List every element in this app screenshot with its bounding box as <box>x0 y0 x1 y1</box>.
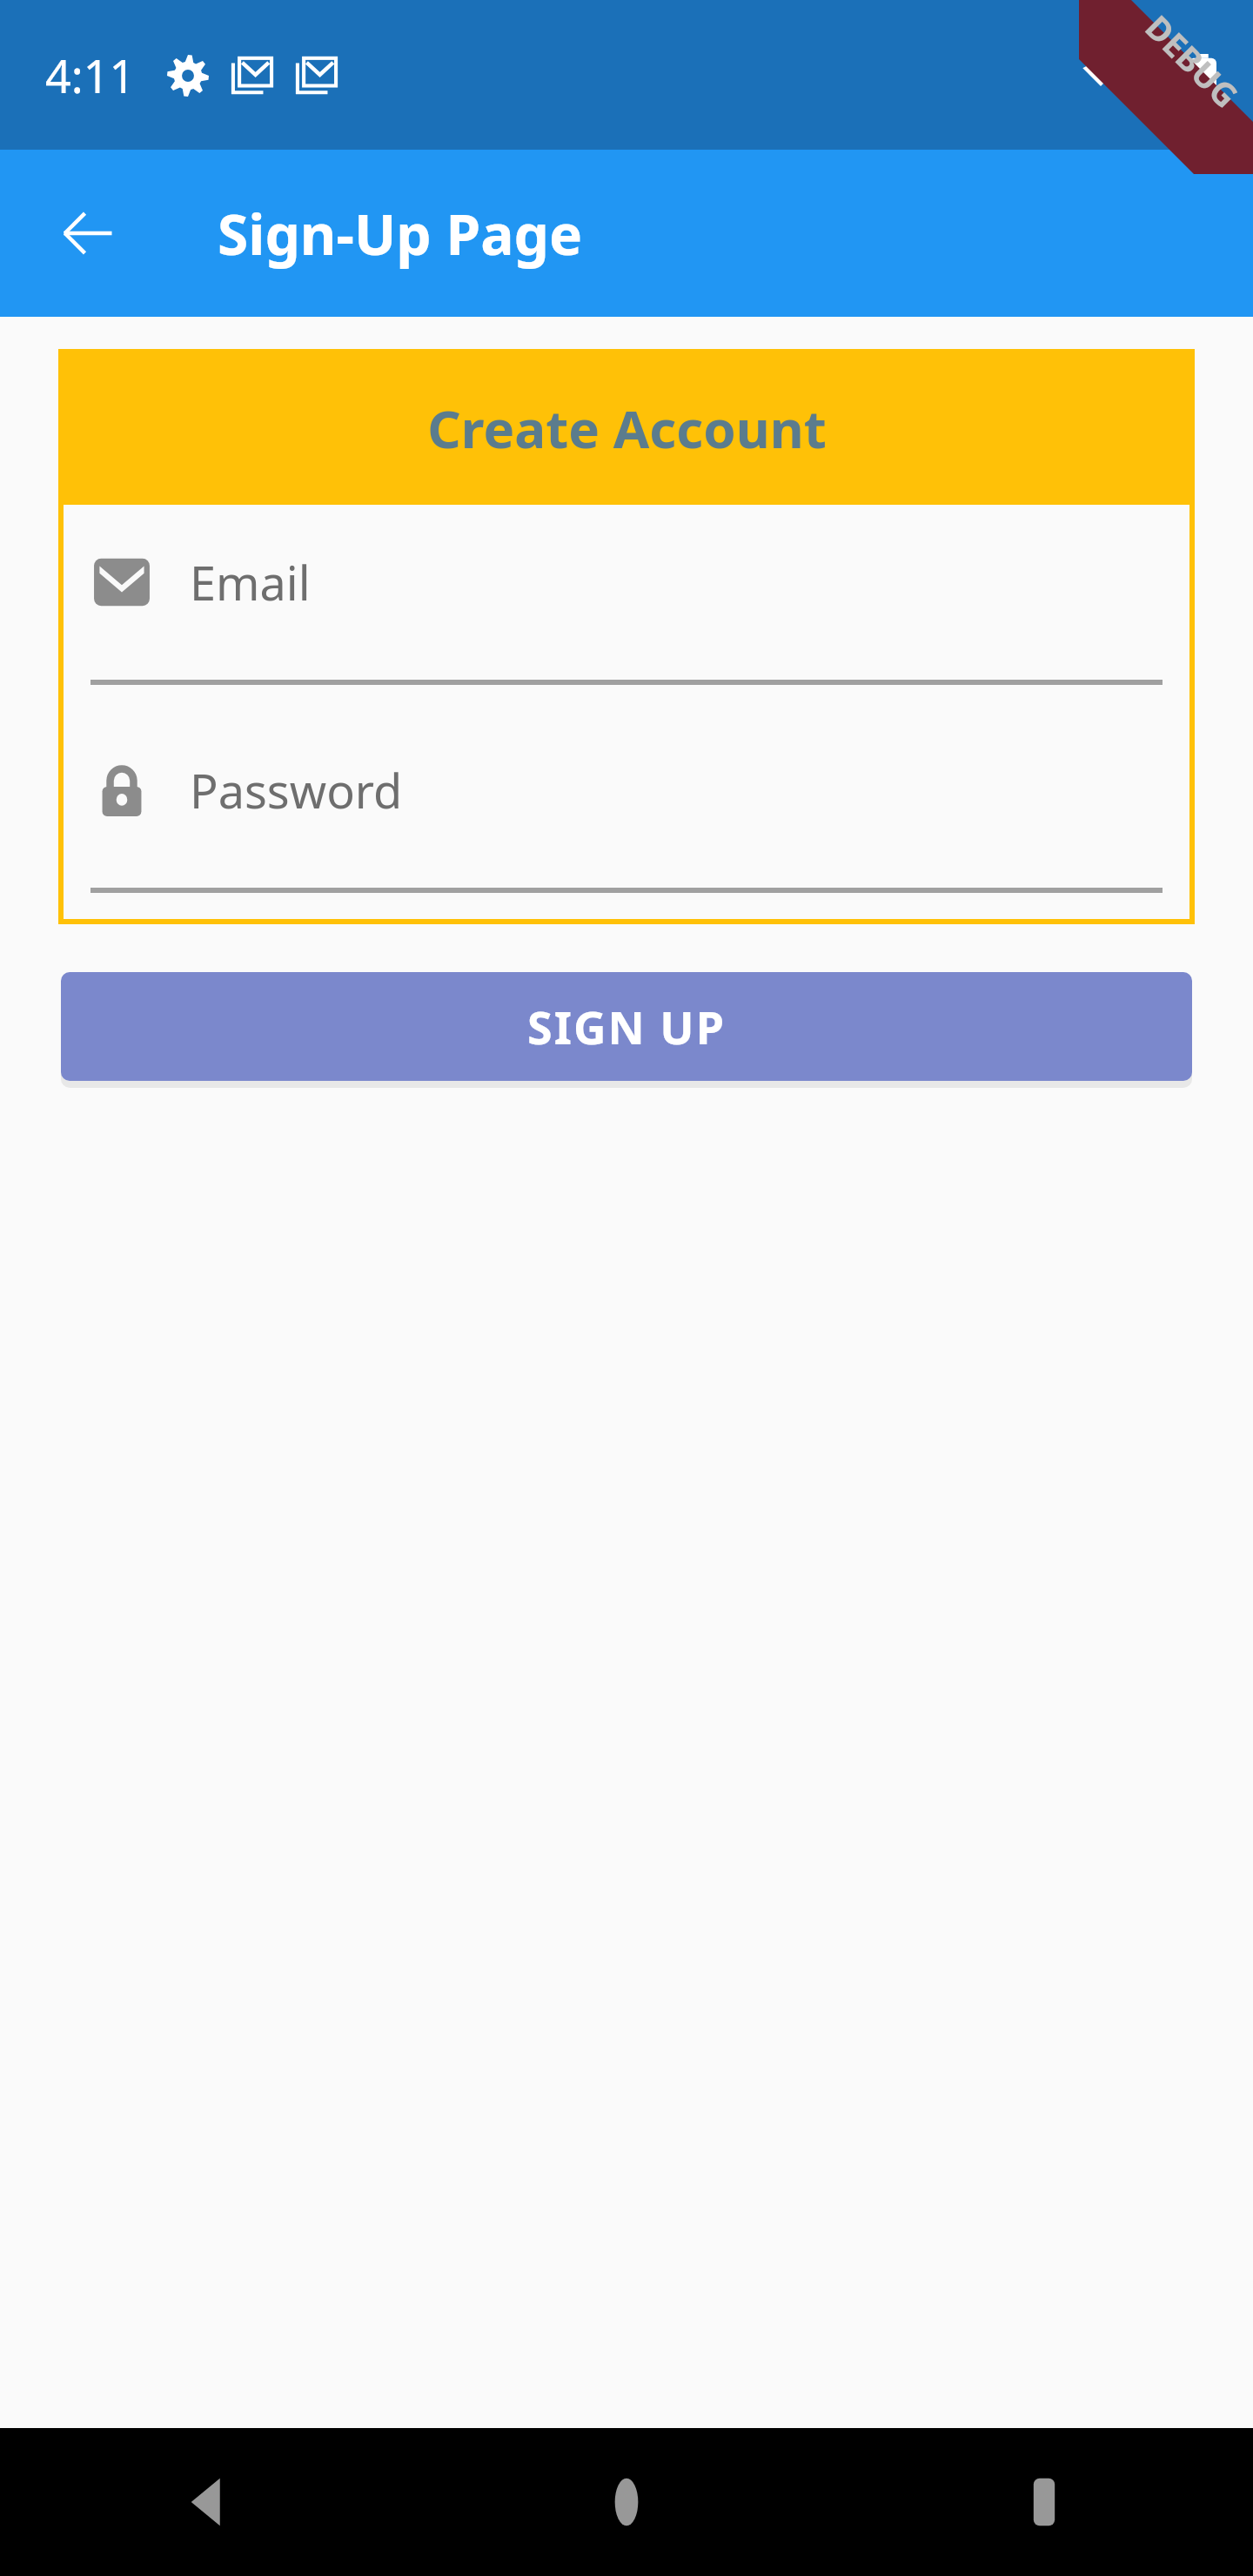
button[interactable]: Home <box>418 2428 835 2576</box>
button[interactable]: Password <box>61 713 1192 921</box>
staticText: 4:11 <box>45 44 136 106</box>
button[interactable]: Email <box>61 505 1192 713</box>
button[interactable]: SIGN UP <box>61 972 1192 1081</box>
button[interactable]: Back <box>47 193 127 273</box>
staticText: Email <box>190 550 311 614</box>
staticText: Password <box>190 758 403 822</box>
staticText: Create Account <box>427 392 827 464</box>
staticText: DEBUG <box>1136 5 1249 117</box>
button[interactable]: Recents <box>835 2428 1253 2576</box>
staticText: SIGN UP <box>527 996 726 1057</box>
staticText: Sign-Up Page <box>218 196 583 272</box>
button[interactable]: Back <box>0 2428 418 2576</box>
